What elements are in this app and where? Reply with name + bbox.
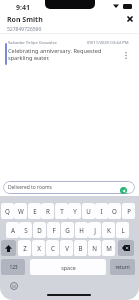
staticText: K	[107, 226, 111, 234]
staticText: T	[60, 207, 64, 215]
staticText: G	[65, 226, 70, 234]
staticText: Ron Smith	[7, 15, 43, 25]
staticText: J	[94, 226, 96, 234]
button[interactable]: J	[88, 222, 101, 238]
staticText: L	[121, 226, 125, 234]
staticText: V	[65, 244, 69, 252]
button[interactable]: B	[74, 240, 87, 256]
button[interactable]: X	[32, 240, 45, 256]
staticText: S	[24, 226, 28, 234]
button[interactable]: G	[61, 222, 74, 238]
button[interactable]: Close	[123, 12, 137, 26]
button[interactable]: Y	[68, 203, 81, 219]
button[interactable]: space	[30, 259, 106, 275]
staticText: R	[46, 207, 50, 215]
button[interactable]: F	[47, 222, 60, 238]
staticText: sparkling water.	[8, 54, 50, 62]
button[interactable]: Emoji keyboard	[9, 281, 18, 290]
staticText: Q	[5, 207, 10, 215]
button[interactable]: 123	[1, 259, 25, 275]
button[interactable]: N	[88, 240, 101, 256]
button[interactable]: P	[122, 203, 135, 219]
staticText: A	[11, 226, 15, 234]
button[interactable]: H	[75, 222, 88, 238]
button[interactable]: M	[102, 240, 115, 256]
button[interactable]: O	[108, 203, 121, 219]
button[interactable]: D	[33, 222, 46, 238]
staticText: 527849726590	[7, 26, 42, 33]
staticText: 123	[9, 264, 18, 271]
staticText: 9:41	[16, 3, 30, 13]
button[interactable]: R	[41, 203, 54, 219]
button[interactable]: Shift	[1, 240, 16, 256]
staticText: N	[92, 244, 97, 252]
staticText: X	[37, 244, 41, 252]
staticText: space	[61, 264, 76, 271]
staticText: Delivered to rooms	[8, 184, 52, 191]
staticText: B	[78, 244, 83, 252]
staticText: F	[52, 226, 56, 234]
button[interactable]: K	[102, 222, 115, 238]
button[interactable]: Z	[18, 240, 31, 256]
staticText: Y	[73, 207, 77, 215]
staticText: O	[112, 207, 117, 215]
button[interactable]: A	[6, 222, 19, 238]
staticText: P	[127, 207, 131, 215]
button[interactable]: More options	[120, 50, 131, 61]
button[interactable]: C	[46, 240, 59, 256]
button[interactable]: L	[116, 222, 129, 238]
staticText: C	[51, 244, 55, 252]
staticText: Z	[23, 244, 27, 252]
button[interactable]: Q	[1, 203, 14, 219]
button[interactable]: Backspace	[118, 240, 134, 256]
staticText: E	[33, 207, 37, 215]
button[interactable]: U	[82, 203, 95, 219]
staticText: W	[18, 207, 24, 215]
staticText: M	[106, 244, 112, 252]
button[interactable]: E	[28, 203, 41, 219]
button[interactable]: S	[19, 222, 32, 238]
button[interactable]: V	[60, 240, 73, 256]
staticText: 09/11/2025 03:44 PM	[87, 40, 129, 46]
staticText: H	[79, 226, 84, 234]
staticText: Salvador Felipe Gonzalez	[8, 40, 57, 46]
staticText: I	[100, 207, 103, 215]
staticText: U	[86, 207, 91, 215]
staticText: return	[115, 264, 130, 271]
button[interactable]: Send	[120, 187, 127, 194]
staticText: D	[37, 226, 42, 234]
staticText: Celebrating anniversary. Requested	[8, 47, 102, 55]
button[interactable]: return	[110, 259, 135, 275]
button[interactable]: I	[95, 203, 108, 219]
button[interactable]: W	[14, 203, 27, 219]
button[interactable]: Delivered to rooms	[3, 181, 135, 194]
button[interactable]: T	[55, 203, 68, 219]
